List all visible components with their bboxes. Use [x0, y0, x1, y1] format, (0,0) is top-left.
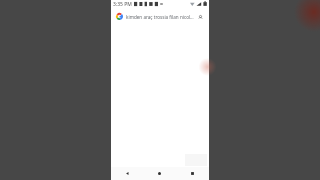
staticText: kimden araç trossia filan nicolaijsgc [126, 14, 194, 20]
button[interactable]: Account [196, 13, 204, 21]
button[interactable]: Home [143, 167, 176, 180]
staticText: 3:35 PM [113, 1, 132, 8]
button[interactable]: Back [111, 167, 143, 180]
button[interactable]: kimden araç trossia filan nicolaijsgc [114, 11, 206, 22]
button[interactable]: Recent apps [176, 167, 209, 180]
